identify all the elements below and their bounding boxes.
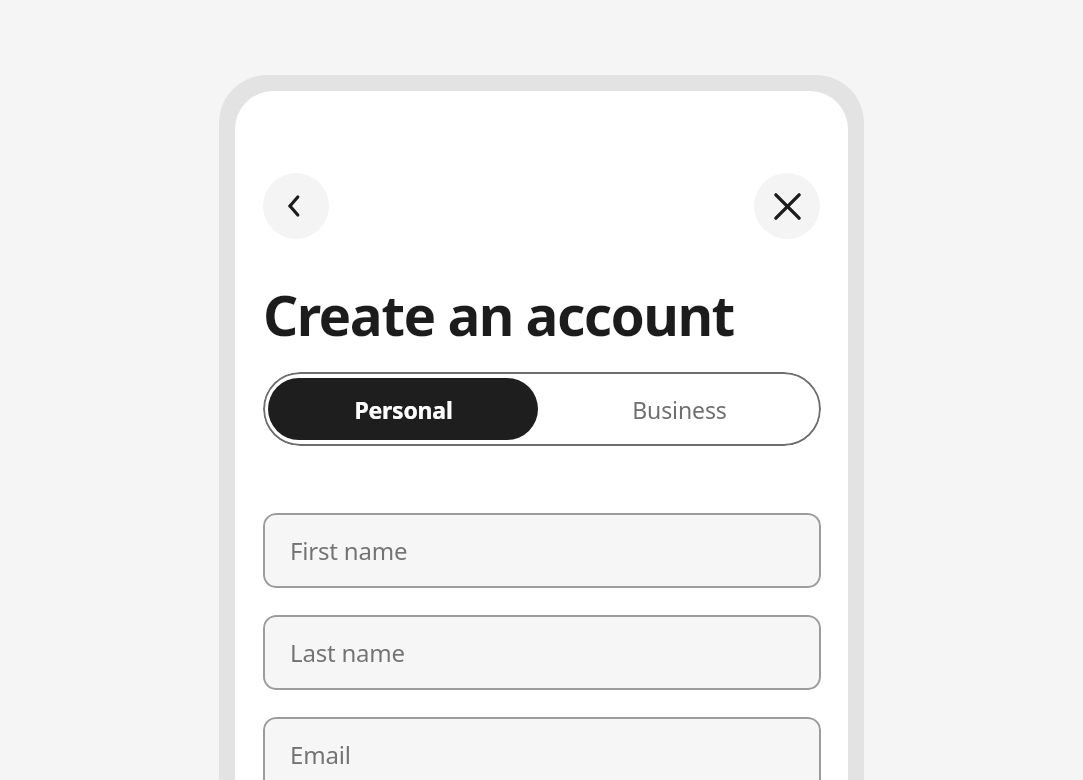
button[interactable]: Back	[263, 173, 329, 239]
staticText: Business	[632, 394, 727, 425]
staticText: Email	[290, 738, 351, 771]
button[interactable]: Close	[754, 173, 820, 239]
button[interactable]: Business	[538, 372, 821, 446]
staticText: Create an account	[263, 277, 734, 352]
button[interactable]: Personal	[268, 378, 538, 440]
button[interactable]: First name	[263, 513, 821, 588]
button[interactable]: Last name	[263, 615, 821, 690]
staticText: First name	[290, 534, 408, 567]
button[interactable]: Email	[263, 717, 821, 780]
staticText: Personal	[354, 394, 453, 425]
staticText: Last name	[290, 636, 405, 669]
